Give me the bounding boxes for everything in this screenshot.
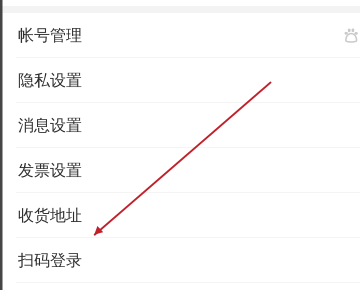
button[interactable]: 扫码登录 <box>0 238 360 283</box>
button[interactable]: 隐私设置 <box>0 58 360 103</box>
staticText: 消息设置 <box>18 116 82 135</box>
button[interactable]: 消息设置 <box>0 103 360 148</box>
button[interactable]: Baidu <box>0 0 360 290</box>
staticText: 扫码登录 <box>18 251 82 270</box>
button[interactable]: 帐号管理 <box>0 13 360 58</box>
button[interactable]: 发票设置 <box>0 148 360 193</box>
staticText: 收货地址 <box>18 206 82 225</box>
button[interactable]: 收货地址 <box>0 193 360 238</box>
staticText: 隐私设置 <box>18 71 82 90</box>
staticText: 帐号管理 <box>18 26 82 45</box>
staticText: 发票设置 <box>18 161 82 180</box>
